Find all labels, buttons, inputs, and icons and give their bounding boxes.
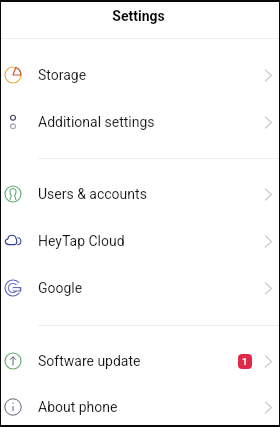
staticText: HeyTap Cloud [38,233,125,249]
staticText: 1 [242,356,248,367]
button[interactable]: Software update [0,338,280,384]
staticText: Software update [38,353,141,369]
staticText: About phone [38,399,118,415]
staticText: Additional settings [38,114,155,130]
button[interactable]: About phone [0,384,280,427]
button[interactable]: Additional settings [0,99,280,145]
staticText: Google [38,280,83,296]
button[interactable]: Google [0,265,280,311]
button[interactable]: HeyTap Cloud [0,218,280,264]
staticText: Users & accounts [38,186,147,202]
button[interactable]: Storage [0,52,280,98]
staticText: Storage [38,67,87,83]
button[interactable]: Users & accounts [0,171,280,217]
staticText: Settings [112,8,165,24]
